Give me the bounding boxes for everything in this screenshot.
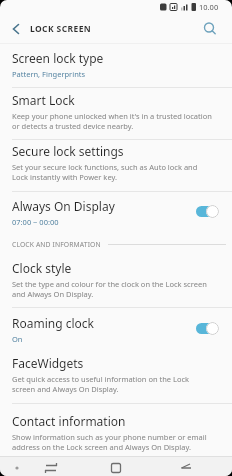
button[interactable] [0,456,78,476]
staticText: Always On Display [12,198,115,214]
staticText: Lock instantly with Power key. [12,172,117,182]
button[interactable]: Clock style [0,252,232,307]
staticText: CLOCK AND INFORMATION [12,240,101,249]
staticText: Clock style [12,260,72,276]
staticText: On [12,334,23,344]
staticText: Screen lock type [12,50,104,66]
staticText: 07:00 ~ 00:00 [12,217,59,227]
staticText: LOCK SCREEN [30,23,92,35]
staticText: Set the type and colour for the clock on… [12,279,207,289]
staticText: Secure lock settings [12,143,124,159]
staticText: address on the Lock screen and Always On… [12,442,191,452]
button[interactable]: Contact information [0,404,232,456]
button[interactable] [155,456,232,476]
staticText: or detects a trusted device nearby. [12,121,134,131]
button[interactable] [78,456,155,476]
staticText: and Always On Display. [12,289,94,299]
button[interactable]: Smart Lock [0,88,232,139]
staticText: Keep your phone unlocked when it's in a … [12,111,212,121]
staticText: Show information such as your phone numb… [12,432,207,442]
staticText: Roaming clock [12,315,94,331]
button[interactable] [6,19,26,39]
staticText: Get quick access to useful information o… [12,374,190,384]
button[interactable] [200,19,220,39]
staticText: 10.00 [199,2,219,12]
staticText: screen and Always On Display. [12,384,119,394]
button[interactable]: FaceWidgets [0,348,232,403]
button[interactable]: Always On Display [0,192,232,230]
button[interactable]: Screen lock type [0,44,232,87]
staticText: Smart Lock [12,92,75,108]
button[interactable]: Secure lock settings [0,140,232,191]
staticText: FaceWidgets [12,355,84,371]
staticText: Pattern, Fingerprints [12,69,86,79]
staticText: Set your secure lock functions, such as … [12,162,198,172]
button[interactable]: Roaming clock [0,308,232,348]
staticText: Contact information [12,413,126,429]
